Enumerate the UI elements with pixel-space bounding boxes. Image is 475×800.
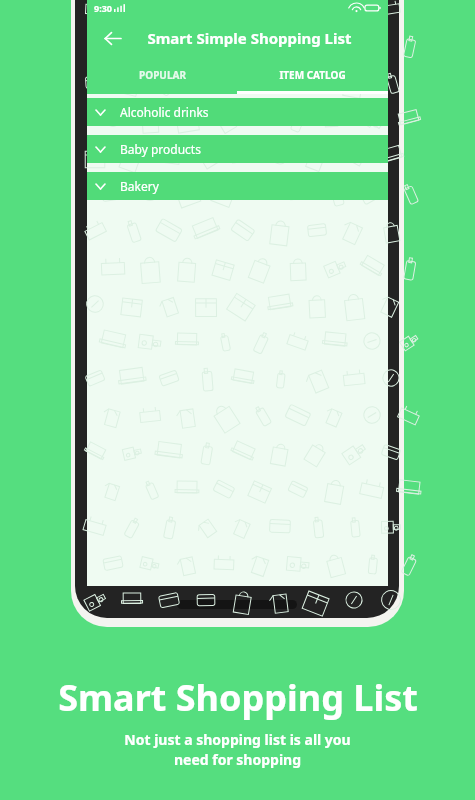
staticText: ITEM CATLOG (279, 68, 346, 82)
button[interactable]: Alcoholic drinks (87, 98, 388, 126)
staticText: POPULAR (139, 68, 186, 82)
staticText: Not just a shopping list is all you need… (124, 730, 351, 770)
button[interactable]: POPULAR (87, 60, 237, 94)
staticText: Baby products (120, 141, 201, 157)
staticText: 9:30 (94, 2, 112, 14)
staticText: Smart Shopping List (58, 673, 418, 722)
staticText: Bakery (120, 178, 159, 194)
button[interactable]: Bakery (87, 172, 388, 200)
button[interactable]: ITEM CATLOG (237, 60, 388, 94)
button[interactable]: Baby products (87, 135, 388, 163)
staticText: Smart Simple Shopping List (123, 28, 376, 48)
button[interactable]: Back (98, 24, 126, 52)
staticText: Alcoholic drinks (120, 104, 209, 120)
